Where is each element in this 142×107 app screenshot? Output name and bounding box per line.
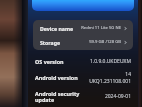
button[interactable]: Device name <box>33 21 133 35</box>
staticText: Storage <box>40 39 61 46</box>
staticText: Device name <box>40 25 74 32</box>
staticText: OS version <box>35 58 83 65</box>
button[interactable]: OS version <box>28 55 138 68</box>
button[interactable]: Storage <box>33 35 133 49</box>
staticText: Android version <box>35 74 83 81</box>
staticText: Redmi 11 Lite 5G NE <box>81 25 121 31</box>
staticText: 2024-09-01 <box>86 93 131 100</box>
staticText: Android security update <box>35 90 83 103</box>
button[interactable]: Update <box>32 0 134 11</box>
staticText: 1.0.9.0.UKDEUXM <box>86 58 131 65</box>
staticText: 14 UKQ1.231108.001 <box>86 71 131 84</box>
button[interactable]: Android version <box>28 68 138 87</box>
staticText: 59.9 GB /128 GB <box>89 39 121 45</box>
button[interactable]: Android security update <box>28 87 138 106</box>
